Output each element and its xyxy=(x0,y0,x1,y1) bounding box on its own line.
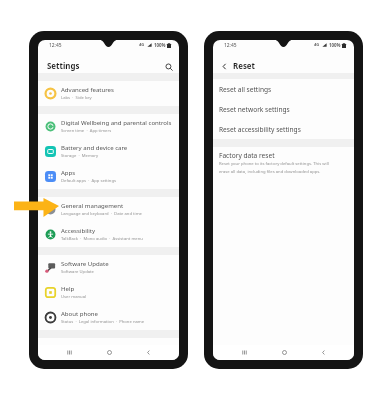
button[interactable]: Back xyxy=(139,345,157,360)
button[interactable]: Advanced features xyxy=(38,81,179,106)
button[interactable]: Accessibility xyxy=(38,222,179,247)
staticText: 100% xyxy=(154,42,166,48)
staticText: User manual xyxy=(61,294,87,300)
button[interactable]: Back xyxy=(219,61,230,72)
staticText: Reset your phone to its factory default … xyxy=(219,161,337,174)
staticText: 4G xyxy=(314,42,320,48)
staticText: Factory data reset xyxy=(219,151,275,160)
button[interactable]: Home xyxy=(275,345,293,360)
staticText: Apps xyxy=(61,169,76,177)
button[interactable]: Apps xyxy=(38,164,179,189)
button[interactable]: Reset network settings xyxy=(213,99,354,119)
staticText: Accessibility xyxy=(61,227,96,235)
staticText: 4G xyxy=(139,42,145,48)
button[interactable]: General management xyxy=(38,197,179,222)
button[interactable]: Software Update xyxy=(38,255,179,280)
staticText: General management xyxy=(61,202,124,210)
button[interactable]: Help xyxy=(38,280,179,305)
staticText: Software Update xyxy=(61,269,94,275)
staticText: 100% xyxy=(329,42,341,48)
staticText: Help xyxy=(61,285,75,293)
staticText: About phone xyxy=(61,310,98,318)
button[interactable]: Home xyxy=(100,345,118,360)
button[interactable]: Battery and device care xyxy=(38,139,179,164)
staticText: Storage · Memory xyxy=(61,153,99,159)
staticText: Software Update xyxy=(61,260,109,268)
button[interactable]: Back xyxy=(314,345,332,360)
button[interactable]: Factory data reset xyxy=(213,147,354,180)
button[interactable]: Search xyxy=(163,61,175,73)
button[interactable]: Digital Wellbeing and parental controls xyxy=(38,114,179,139)
staticText: Reset accessibility settings xyxy=(219,125,301,134)
button[interactable]: Recent apps xyxy=(235,345,253,360)
staticText: 12:45 xyxy=(224,42,237,49)
staticText: Reset all settings xyxy=(219,85,272,94)
staticText: Battery and device care xyxy=(61,144,128,152)
staticText: Reset xyxy=(233,61,255,72)
staticText: TalkBack · Mono audio · Assistant menu xyxy=(61,236,143,242)
staticText: Default apps · App settings xyxy=(61,178,117,184)
staticText: 12:45 xyxy=(49,42,62,49)
staticText: Advanced features xyxy=(61,86,114,94)
button[interactable]: About phone xyxy=(38,305,179,330)
staticText: Language and keyboard · Date and time xyxy=(61,211,142,217)
other: Pointer arrow xyxy=(14,198,59,217)
staticText: Reset network settings xyxy=(219,105,290,114)
staticText: Digital Wellbeing and parental controls xyxy=(61,119,172,127)
button[interactable]: Settings xyxy=(47,61,80,72)
staticText: Screen time · App timers xyxy=(61,128,112,134)
staticText: Labs · Side key xyxy=(61,95,92,101)
button[interactable]: Recent apps xyxy=(60,345,78,360)
button[interactable]: Reset accessibility settings xyxy=(213,119,354,139)
button[interactable]: Reset all settings xyxy=(213,79,354,99)
staticText: Status · Legal information · Phone name xyxy=(61,319,145,325)
